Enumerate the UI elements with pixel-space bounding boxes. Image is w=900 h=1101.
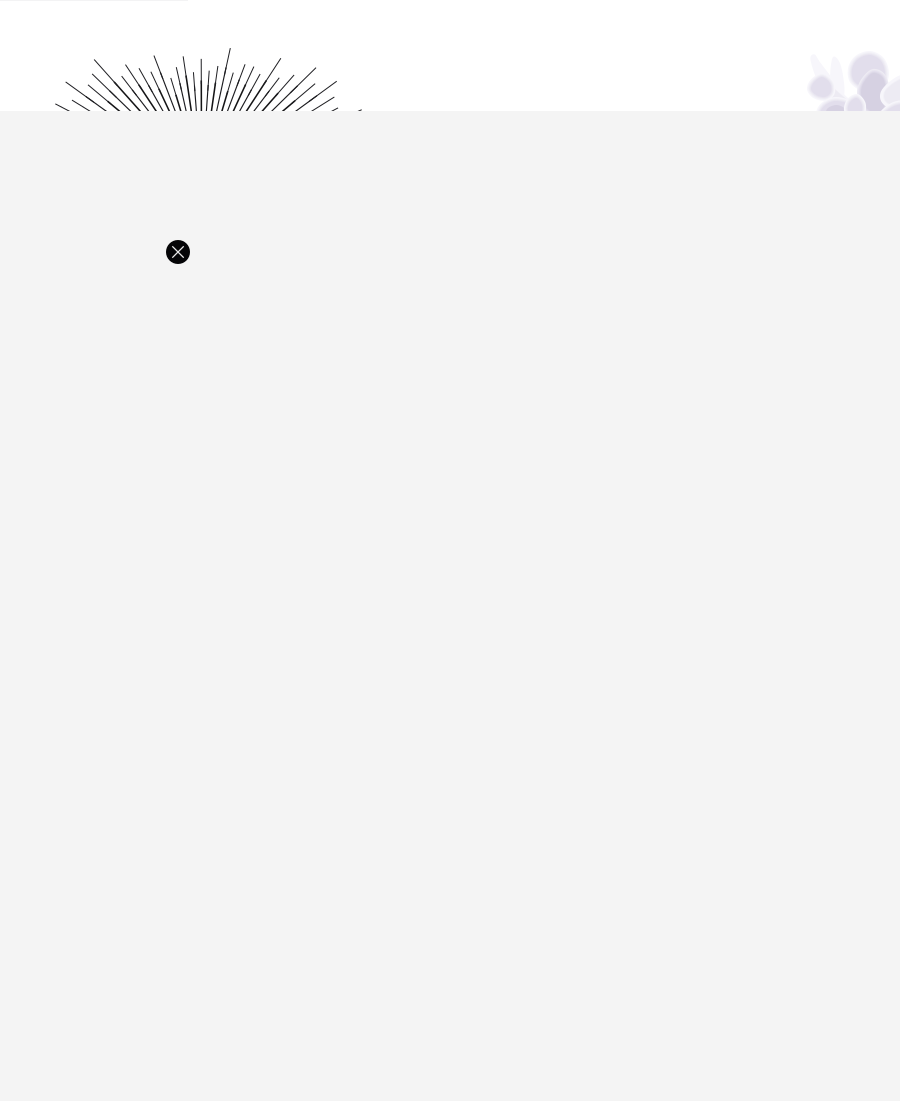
button[interactable]: Close <box>166 240 190 264</box>
